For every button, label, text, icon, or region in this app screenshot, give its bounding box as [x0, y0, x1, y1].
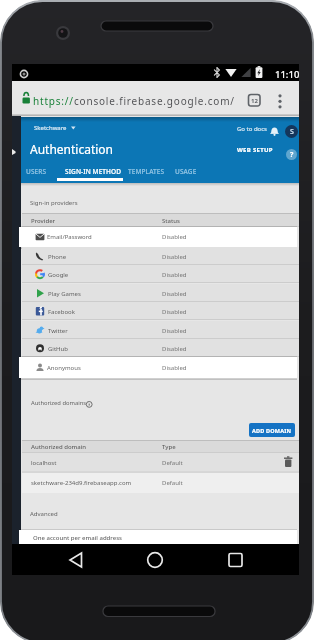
- staticText: USAGE: [175, 167, 197, 176]
- button[interactable]: [62, 544, 102, 575]
- staticText: Twitter: [48, 327, 68, 335]
- button[interactable]: localhost: [22, 453, 299, 473]
- staticText: Disabled: [162, 364, 187, 372]
- button[interactable]: Phone: [22, 247, 299, 265]
- staticText: GitHub: [48, 345, 68, 353]
- staticText: Go to docs: [237, 125, 267, 133]
- staticText: Advanced: [30, 510, 58, 518]
- button[interactable]: Twitter: [22, 321, 299, 339]
- staticText: Default: [162, 479, 183, 487]
- button[interactable]: Sketchware: [34, 124, 76, 132]
- staticText: 12: [251, 97, 258, 105]
- staticText: Sign-in providers: [30, 199, 78, 207]
- staticText: Disabled: [162, 290, 187, 298]
- staticText: One account per email address: [33, 534, 123, 542]
- staticText: localhost: [31, 459, 57, 467]
- button[interactable]: sketchware-234d9.firebaseapp.com: [22, 473, 299, 493]
- button[interactable]: GitHub: [22, 339, 299, 357]
- staticText: Status: [162, 217, 181, 225]
- button[interactable]: [137, 544, 177, 575]
- staticText: Type: [162, 443, 176, 451]
- staticText: Disabled: [162, 271, 187, 279]
- button[interactable]: Google: [22, 265, 299, 283]
- staticText: Authorized domain: [31, 443, 87, 451]
- staticText: Disabled: [162, 327, 187, 335]
- staticText: Play Games: [48, 290, 81, 298]
- staticText: Facebook: [48, 308, 75, 316]
- staticText: TEMPLATES: [128, 167, 165, 176]
- button[interactable]: ?: [286, 149, 297, 160]
- staticText: Sketchware: [34, 124, 67, 132]
- staticText: 11:10: [275, 68, 300, 81]
- staticText: Disabled: [162, 253, 187, 261]
- button[interactable]: Email/Password: [19, 227, 297, 247]
- staticText: Anonymous: [47, 364, 81, 372]
- button[interactable]: One account per email address: [19, 530, 297, 544]
- staticText: Authorized domains: [31, 399, 87, 407]
- button[interactable]: ADD DOMAIN: [249, 423, 295, 437]
- button[interactable]: [213, 544, 253, 575]
- staticText: Provider: [31, 217, 56, 225]
- button[interactable]: Play Games: [22, 284, 299, 302]
- staticText: Disabled: [162, 233, 187, 241]
- staticText: sketchware-234d9.firebaseapp.com: [31, 479, 132, 487]
- button[interactable]: Anonymous: [19, 357, 297, 378]
- staticText: Phone: [48, 253, 67, 261]
- staticText: Default: [162, 459, 183, 467]
- button[interactable]: S: [285, 125, 298, 138]
- staticText: USERS: [26, 167, 47, 176]
- staticText: Google: [48, 271, 69, 279]
- staticText: S: [290, 127, 294, 137]
- staticText: ADD DOMAIN: [252, 427, 292, 434]
- staticText: console.firebase.google.com/: [74, 94, 235, 108]
- button[interactable]: Facebook: [22, 302, 299, 320]
- staticText: Disabled: [162, 308, 187, 316]
- staticText: Email/Password: [47, 233, 92, 241]
- staticText: SIGN-IN METHOD: [65, 167, 122, 176]
- staticText: https://: [33, 94, 74, 108]
- staticText: Authentication: [30, 141, 114, 157]
- staticText: WEB SETUP: [237, 146, 273, 154]
- staticText: ?: [290, 150, 294, 160]
- staticText: Disabled: [162, 345, 187, 353]
